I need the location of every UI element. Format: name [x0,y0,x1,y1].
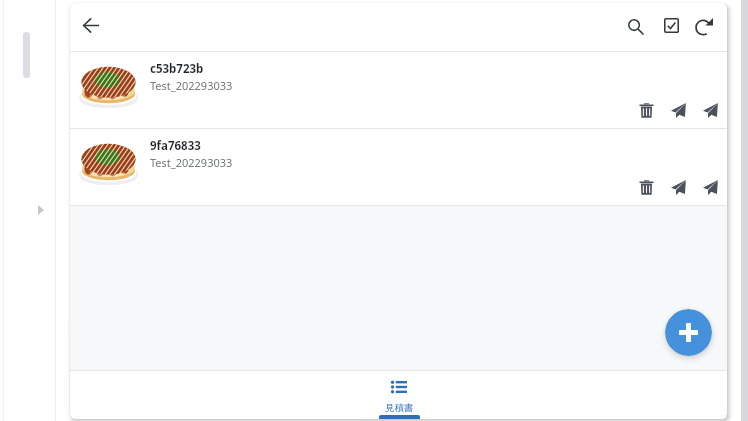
button[interactable]: Delete [630,171,662,203]
button[interactable]: Send [662,94,694,126]
staticText: Test_202293033 [150,155,233,170]
button[interactable]: Refresh [684,6,724,46]
staticText: Test_202293033 [150,78,233,93]
staticText: 9fa76833 [150,138,201,154]
button[interactable]: Back [71,5,111,45]
staticText: 見積書 [385,402,414,414]
button[interactable]: Delete [630,94,662,126]
button[interactable]: Forward [694,94,726,126]
button[interactable]: Search [616,7,656,47]
button[interactable]: Select all [651,5,691,45]
button[interactable]: 見積書 [359,371,439,419]
button[interactable]: Send [662,171,694,203]
button[interactable]: 9fa76833 [70,129,727,205]
staticText: c53b723b [150,61,204,77]
button[interactable]: Forward [694,171,726,203]
button[interactable]: c53b723b [70,52,727,128]
button[interactable]: Add [665,309,712,356]
